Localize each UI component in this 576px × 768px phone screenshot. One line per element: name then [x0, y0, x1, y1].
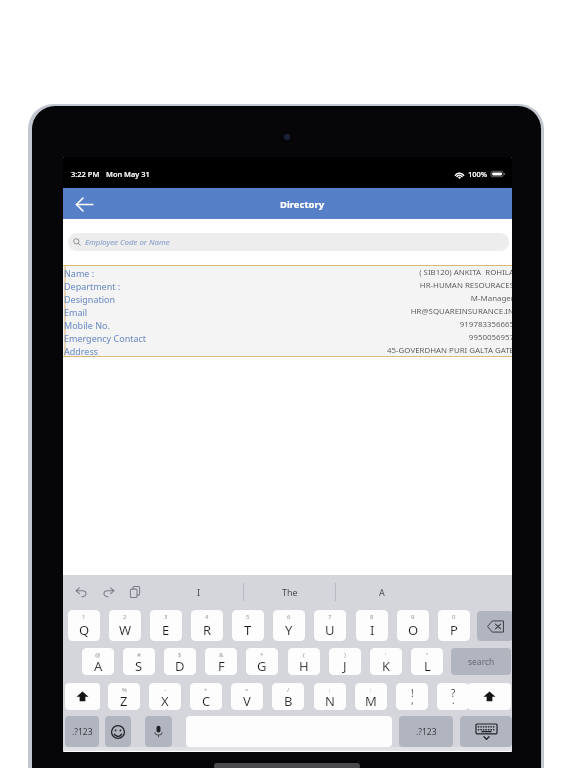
button[interactable]: ?: [437, 683, 469, 710]
staticText: %: [122, 686, 127, 694]
button[interactable]: Employee Code or Name: [68, 233, 509, 251]
button[interactable]: =: [231, 683, 263, 710]
button[interactable]: Undo: [71, 575, 91, 609]
staticText: M: [365, 692, 377, 710]
staticText: N: [325, 692, 335, 710]
staticText: 7: [328, 613, 332, 621]
button[interactable]: I: [155, 575, 243, 609]
button[interactable]: Emoji: [105, 716, 131, 747]
button[interactable]: 5: [232, 610, 264, 641]
staticText: Q: [79, 621, 90, 639]
staticText: M-Manager: [470, 293, 512, 304]
button[interactable]: -: [149, 683, 181, 710]
button[interactable]: 2: [109, 610, 141, 641]
button[interactable]: The: [244, 575, 335, 609]
staticText: 4: [205, 613, 209, 621]
staticText: 1: [82, 613, 86, 621]
staticText: Name :: [64, 267, 95, 279]
staticText: I: [197, 586, 201, 598]
button[interactable]: Back: [69, 189, 99, 219]
button[interactable]: ": [411, 648, 443, 675]
button[interactable]: %: [108, 683, 140, 710]
button[interactable]: ): [329, 648, 361, 675]
staticText: S: [135, 657, 143, 675]
button[interactable]: Name :: [63, 265, 512, 357]
staticText: ,: [411, 693, 414, 707]
button[interactable]: 8: [356, 610, 388, 641]
staticText: K: [382, 657, 391, 675]
staticText: Emergency Contact: [64, 332, 147, 344]
staticText: 2: [123, 613, 127, 621]
button[interactable]: Hide keyboard: [460, 716, 512, 747]
staticText: HR-HUMAN RESOURACES: [419, 280, 512, 291]
button[interactable]: #: [123, 648, 155, 675]
staticText: +: [204, 686, 208, 694]
staticText: U: [325, 621, 335, 639]
staticText: (: [303, 651, 305, 659]
button[interactable]: .?123: [399, 716, 453, 747]
staticText: R: [203, 621, 212, 639]
button[interactable]: Paste: [125, 575, 145, 609]
staticText: $: [178, 651, 182, 659]
button[interactable]: (: [288, 648, 320, 675]
staticText: L: [424, 657, 431, 675]
button[interactable]: Backspace: [477, 611, 512, 641]
button[interactable]: search: [451, 648, 511, 675]
button[interactable]: +: [190, 683, 222, 710]
staticText: /: [287, 686, 290, 694]
staticText: 100%: [468, 169, 488, 179]
staticText: HR@SQUAREINSURANCE.IN: [410, 306, 512, 317]
button[interactable]: 0: [438, 610, 470, 641]
staticText: 5: [246, 613, 250, 621]
staticText: I: [370, 621, 375, 639]
button[interactable]: ': [370, 648, 402, 675]
staticText: 3: [164, 613, 168, 621]
staticText: The: [282, 586, 298, 598]
staticText: Z: [120, 692, 128, 710]
staticText: Email: [64, 306, 88, 318]
staticText: ;: [329, 686, 331, 694]
button[interactable]: /: [272, 683, 304, 710]
staticText: O: [408, 621, 419, 639]
staticText: ?: [451, 686, 456, 700]
staticText: T: [244, 621, 252, 639]
staticText: ": [426, 651, 429, 659]
button[interactable]: Redo: [98, 575, 118, 609]
button[interactable]: ;: [314, 683, 346, 710]
button[interactable]: Shift: [65, 683, 100, 710]
button[interactable]: Shift: [468, 683, 511, 710]
staticText: D: [175, 657, 185, 675]
staticText: .: [452, 693, 455, 707]
staticText: A: [94, 657, 103, 675]
staticText: E: [162, 621, 170, 639]
staticText: .?123: [72, 726, 93, 738]
staticText: V: [243, 692, 251, 710]
staticText: 0: [452, 613, 456, 621]
button[interactable]: A: [336, 575, 427, 609]
staticText: Address: [64, 345, 99, 357]
button[interactable]: 6: [273, 610, 305, 641]
staticText: 45-GOVERDHAN PURI GALTA GATE: [387, 345, 512, 356]
button[interactable]: .?123: [65, 716, 99, 747]
button[interactable]: 9: [397, 610, 429, 641]
button[interactable]: *: [246, 648, 278, 675]
button[interactable]: &: [205, 648, 237, 675]
staticText: G: [257, 657, 267, 675]
staticText: Designation: [64, 293, 116, 305]
button[interactable]: @: [82, 648, 114, 675]
staticText: Department :: [64, 280, 121, 292]
button[interactable]: 7: [314, 610, 346, 641]
button[interactable]: 3: [150, 610, 182, 641]
staticText: P: [450, 621, 458, 639]
button[interactable]: 1: [68, 610, 100, 641]
staticText: ': [385, 651, 387, 659]
button[interactable]: $: [164, 648, 196, 675]
staticText: .?123: [416, 726, 437, 738]
staticText: Employee Code or Name: [85, 237, 170, 248]
staticText: Mon May 31: [106, 169, 150, 179]
button[interactable]: 4: [191, 610, 223, 641]
button[interactable]: Dictation: [145, 716, 172, 747]
button[interactable]: :: [355, 683, 387, 710]
button[interactable]: !: [396, 683, 428, 710]
